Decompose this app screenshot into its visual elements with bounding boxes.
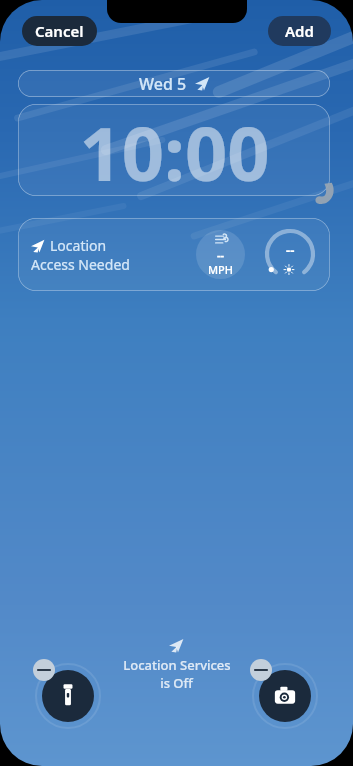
button[interactable]: Camera xyxy=(259,670,311,722)
button[interactable]: Location xyxy=(18,218,330,291)
staticText: MPH xyxy=(208,262,234,277)
button[interactable]: Add xyxy=(268,16,331,46)
staticText: is Off xyxy=(160,674,193,692)
button[interactable]: Wind speed xyxy=(196,230,245,279)
button[interactable]: Wed 5 xyxy=(18,70,330,97)
button[interactable]: UV index xyxy=(264,228,316,280)
button[interactable]: Remove camera xyxy=(250,659,272,681)
button[interactable]: 10:00 xyxy=(18,104,330,196)
staticText: Location xyxy=(50,236,107,255)
staticText: -- xyxy=(217,247,225,262)
staticText: Access Needed xyxy=(31,255,130,274)
button[interactable]: Flashlight xyxy=(42,670,94,722)
staticText: Location Services xyxy=(123,656,231,674)
button[interactable]: Cancel xyxy=(22,16,97,46)
button[interactable]: Remove flashlight xyxy=(33,659,55,681)
staticText: Cancel xyxy=(35,21,84,41)
staticText: 10:00 xyxy=(79,104,270,194)
staticText: Add xyxy=(285,21,314,41)
staticText: Wed 5 xyxy=(139,73,187,95)
staticText: -- xyxy=(286,241,295,259)
